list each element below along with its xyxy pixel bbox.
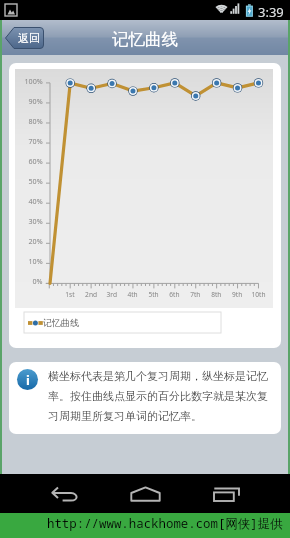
staticText: 横坐标代表是第几个复习周期，纵坐标是记忆率。按住曲线点显示的百分比数字就是某次复… — [48, 369, 273, 423]
staticText: 记忆曲线 — [112, 29, 178, 50]
button[interactable]: 返回 — [5, 27, 44, 49]
staticText: http://www.hackhome.com[网侠]提供 — [47, 515, 283, 532]
staticText: i — [26, 371, 30, 389]
staticText: 记忆曲线 — [43, 317, 79, 328]
button[interactable]: Home — [125, 474, 166, 513]
staticText: 返回 — [18, 31, 40, 45]
button[interactable]: Back — [44, 474, 85, 513]
staticText: 3:39 — [258, 3, 284, 21]
button[interactable]: Recent apps — [206, 474, 247, 513]
